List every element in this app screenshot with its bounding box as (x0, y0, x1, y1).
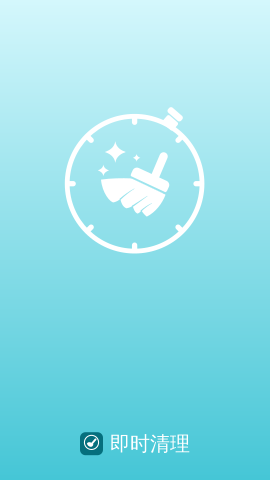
staticText: 即时清理 (110, 431, 190, 456)
